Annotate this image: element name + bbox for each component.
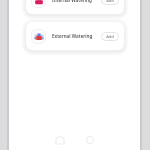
button[interactable]: Add [101,32,119,41]
button[interactable]: External Watering [26,22,124,50]
button[interactable]: Home [53,133,67,147]
button[interactable]: Settings [83,133,97,147]
staticText: Add [106,34,114,39]
staticText: External Watering [52,33,93,39]
button[interactable]: Add [101,0,119,5]
staticText: Add [106,0,114,3]
staticText: Internal Watering [52,0,92,3]
button[interactable]: Internal Watering [26,0,124,14]
